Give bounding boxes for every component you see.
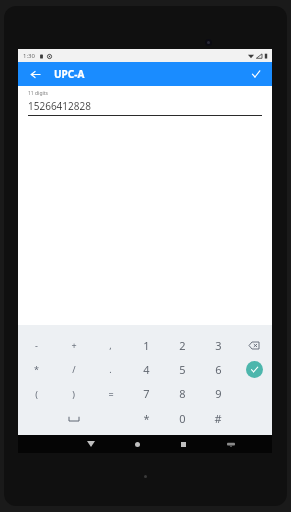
button[interactable]: 6 bbox=[200, 357, 236, 381]
button[interactable]: ) bbox=[55, 381, 92, 406]
staticText: 1:30 bbox=[23, 52, 35, 60]
staticText: 5 bbox=[179, 362, 186, 377]
button[interactable]: / bbox=[55, 357, 92, 381]
staticText: 7 bbox=[143, 386, 150, 401]
button[interactable]: Navigate up bbox=[26, 65, 44, 83]
button[interactable]: * bbox=[18, 357, 55, 381]
staticText: ( bbox=[35, 388, 38, 400]
button[interactable]: 1 bbox=[129, 333, 164, 357]
button[interactable] bbox=[55, 406, 92, 431]
button[interactable]: + bbox=[55, 333, 92, 357]
staticText: ) bbox=[72, 388, 75, 400]
staticText: 4 bbox=[143, 362, 150, 377]
button[interactable]: Accept bbox=[246, 361, 263, 378]
staticText: - bbox=[35, 339, 38, 351]
staticText: 1 bbox=[143, 338, 150, 353]
button[interactable]: , bbox=[92, 333, 129, 357]
staticText: / bbox=[72, 363, 76, 375]
button[interactable]: Backspace bbox=[246, 337, 262, 353]
button[interactable]: 7 bbox=[129, 381, 164, 406]
staticText: + bbox=[71, 339, 77, 351]
staticText: . bbox=[109, 363, 112, 375]
staticText: 11 digits bbox=[28, 90, 48, 97]
button[interactable]: Recent apps bbox=[160, 435, 207, 453]
staticText: 9 bbox=[215, 386, 222, 401]
button[interactable]: 3 bbox=[200, 333, 236, 357]
button[interactable]: 2 bbox=[164, 333, 200, 357]
button[interactable]: 0 bbox=[164, 406, 200, 431]
staticText: # bbox=[214, 411, 222, 426]
staticText: * bbox=[143, 411, 150, 426]
button[interactable]: Change keyboard bbox=[207, 435, 254, 453]
button[interactable]: Back bbox=[68, 435, 114, 453]
staticText: 0 bbox=[179, 411, 186, 426]
button[interactable]: 4 bbox=[129, 357, 164, 381]
button[interactable]: 8 bbox=[164, 381, 200, 406]
button[interactable]: 5 bbox=[164, 357, 200, 381]
staticText: UPC-A bbox=[54, 67, 85, 81]
staticText: 15266412828 bbox=[28, 99, 91, 113]
button[interactable]: # bbox=[200, 406, 236, 431]
button[interactable]: ( bbox=[18, 381, 55, 406]
staticText: 6 bbox=[215, 362, 222, 377]
button[interactable]: * bbox=[129, 406, 164, 431]
staticText: * bbox=[34, 363, 39, 375]
button[interactable]: Home bbox=[114, 435, 160, 453]
staticText: 8 bbox=[179, 386, 186, 401]
staticText: 2 bbox=[179, 338, 186, 353]
button[interactable]: . bbox=[92, 357, 129, 381]
button[interactable]: Save bbox=[247, 65, 265, 83]
button[interactable]: 11 digits bbox=[18, 86, 272, 116]
staticText: 3 bbox=[215, 338, 222, 353]
button[interactable]: 9 bbox=[200, 381, 236, 406]
staticText: = bbox=[108, 388, 114, 400]
button[interactable]: - bbox=[18, 333, 55, 357]
button[interactable]: = bbox=[92, 381, 129, 406]
staticText: , bbox=[109, 339, 112, 351]
